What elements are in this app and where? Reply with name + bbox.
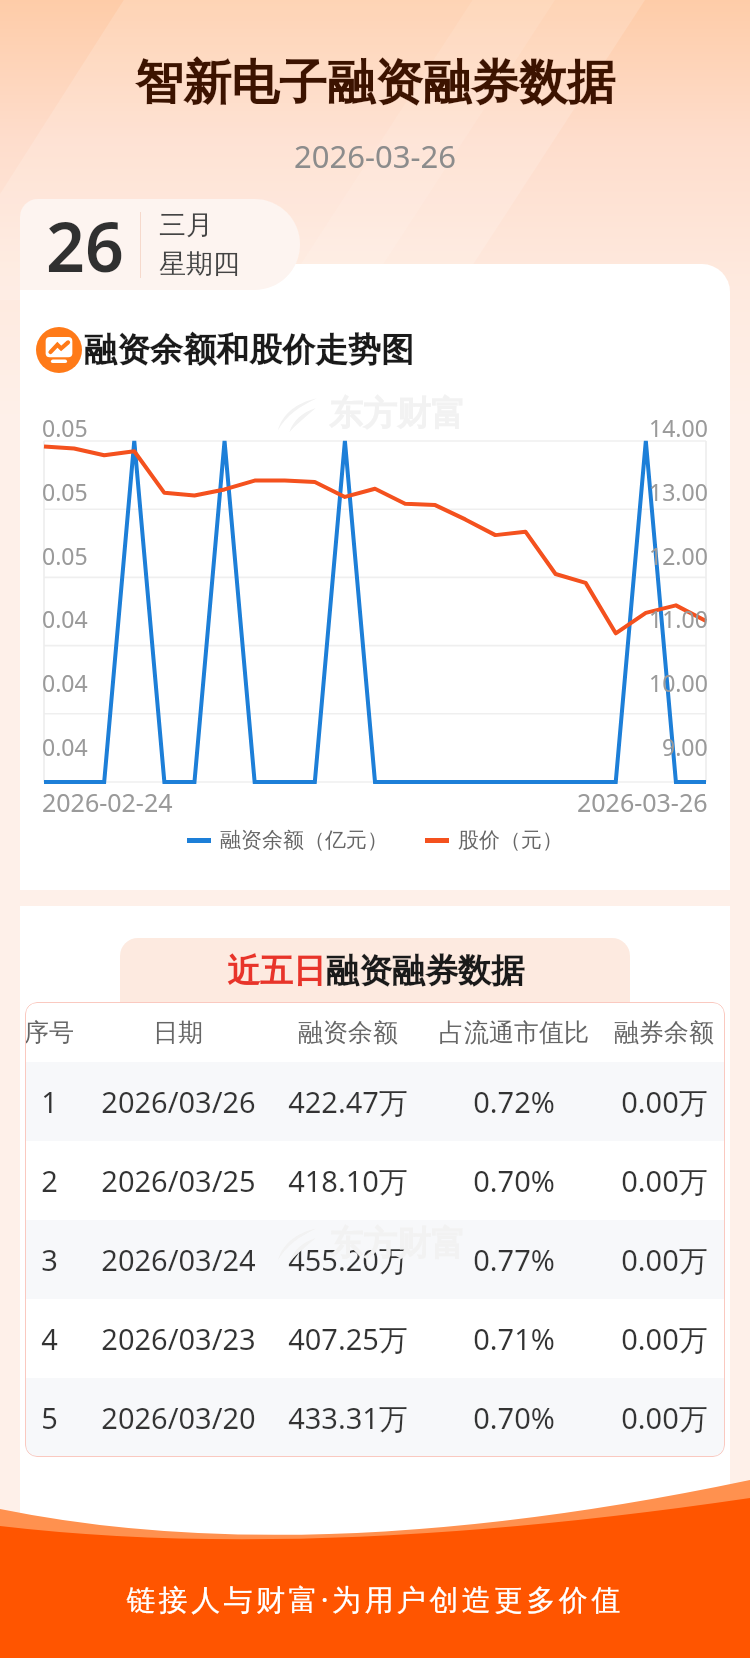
button[interactable]: 5 xyxy=(25,1378,725,1457)
staticText: 10.00 xyxy=(649,667,708,698)
staticText: 0.00万 xyxy=(621,1398,708,1438)
staticText: 0.00万 xyxy=(621,1240,708,1280)
staticText: 星期四 xyxy=(159,247,240,281)
staticText: 融资余额 xyxy=(298,1017,398,1048)
staticText: 0.71% xyxy=(473,1319,555,1358)
staticText: 2026-02-24 xyxy=(42,785,173,819)
button[interactable]: 股价（元） xyxy=(425,827,563,853)
staticText: 2026-03-26 xyxy=(0,135,750,177)
staticText: 0.04 xyxy=(42,667,88,698)
staticText: 智新电子融资融券数据 xyxy=(0,53,750,113)
staticText: 0.00万 xyxy=(621,1082,708,1122)
other: Chart xyxy=(36,327,82,373)
staticText: 融资融券数据 xyxy=(326,950,524,992)
staticText: 0.00万 xyxy=(621,1319,708,1359)
button[interactable]: 4 xyxy=(25,1299,725,1378)
staticText: 12.00 xyxy=(649,540,708,571)
staticText: 股价（元） xyxy=(458,827,563,853)
staticText: 0.05 xyxy=(42,476,88,507)
staticText: 东方财富 xyxy=(329,1222,465,1265)
staticText: 407.25万 xyxy=(288,1319,408,1359)
staticText: 2026/03/25 xyxy=(101,1161,256,1200)
staticText: 2026/03/26 xyxy=(101,1082,256,1121)
staticText: 433.31万 xyxy=(288,1398,408,1438)
staticText: 0.70% xyxy=(473,1398,555,1437)
staticText: 11.00 xyxy=(649,603,708,634)
staticText: 序号 xyxy=(25,1017,74,1048)
staticText: 融券余额 xyxy=(614,1017,714,1048)
staticText: 5 xyxy=(41,1398,58,1437)
staticText: 三月 xyxy=(159,208,213,242)
staticText: 0.04 xyxy=(42,603,88,634)
staticText: 融资余额和股价走势图 xyxy=(84,329,414,371)
staticText: 418.10万 xyxy=(288,1161,408,1201)
staticText: 融资余额（亿元） xyxy=(220,827,388,853)
staticText: 2026/03/20 xyxy=(101,1398,256,1437)
staticText: 0.70% xyxy=(473,1161,555,1200)
staticText: 近五日 xyxy=(227,950,326,992)
staticText: 0.00万 xyxy=(621,1161,708,1201)
staticText: 0.05 xyxy=(42,412,88,443)
staticText: 东方财富 xyxy=(329,392,465,435)
staticText: 占流通市值比 xyxy=(439,1017,589,1048)
button[interactable]: 3 xyxy=(25,1220,725,1299)
staticText: 422.47万 xyxy=(288,1082,408,1122)
staticText: 0.04 xyxy=(42,731,88,762)
staticText: 日期 xyxy=(153,1017,203,1048)
staticText: 9.00 xyxy=(662,731,708,762)
button[interactable]: 26 xyxy=(20,199,300,290)
button[interactable]: 1 xyxy=(25,1062,725,1141)
staticText: 455.20万 xyxy=(288,1240,408,1280)
staticText: 3 xyxy=(41,1240,58,1279)
staticText: 4 xyxy=(41,1319,58,1358)
staticText: 2026/03/24 xyxy=(101,1240,256,1279)
staticText: 26 xyxy=(46,199,124,290)
staticText: 13.00 xyxy=(649,476,708,507)
staticText: 1 xyxy=(41,1082,58,1121)
button[interactable]: 融资余额（亿元） xyxy=(187,827,388,853)
staticText: 2026/03/23 xyxy=(101,1319,256,1358)
button[interactable]: 序号 xyxy=(25,1002,725,1062)
staticText: 14.00 xyxy=(649,412,708,443)
staticText: 0.77% xyxy=(473,1240,555,1279)
staticText: 0.72% xyxy=(473,1082,555,1121)
staticText: 链接人与财富·为用户创造更多价值 xyxy=(0,1579,750,1619)
staticText: 2026-03-26 xyxy=(577,785,708,819)
button[interactable]: 2 xyxy=(25,1141,725,1220)
staticText: 0.05 xyxy=(42,540,88,571)
staticText: 2 xyxy=(41,1161,58,1200)
